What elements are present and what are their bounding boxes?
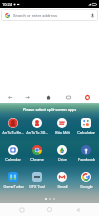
button[interactable]: Home bbox=[43, 203, 56, 216]
staticText: Google bbox=[80, 184, 93, 189]
staticText: GFX Tool bbox=[29, 184, 45, 189]
staticText: 10:24 bbox=[2, 2, 12, 7]
button[interactable]: Google bbox=[75, 172, 97, 189]
button[interactable]: Gmail bbox=[51, 172, 73, 189]
staticText: Please select split-screen apps bbox=[0, 107, 99, 112]
button[interactable]: GameTurbo bbox=[2, 172, 24, 189]
button[interactable]: Search or enter address bbox=[1, 9, 98, 21]
button[interactable]: AnTuTu Benc… bbox=[2, 118, 24, 135]
button[interactable]: Báo Mới bbox=[51, 118, 73, 135]
button[interactable]: Back bbox=[71, 203, 84, 216]
staticText: AnTuTu Benc… bbox=[2, 130, 24, 135]
button[interactable]: Home bbox=[42, 91, 55, 104]
staticText: GameTurbo bbox=[3, 184, 24, 189]
staticText: Calculator bbox=[77, 130, 95, 135]
button[interactable]: Recent apps bbox=[15, 203, 28, 216]
button[interactable]: Calculator bbox=[75, 118, 97, 135]
button[interactable]: Drive bbox=[51, 145, 73, 162]
staticText: Báo Mới bbox=[55, 130, 70, 135]
staticText: AnTuTu 3DBe… bbox=[26, 130, 48, 135]
staticText: Search or enter address bbox=[13, 13, 58, 18]
button[interactable]: Forward bbox=[21, 91, 34, 104]
button[interactable]: Back bbox=[4, 91, 17, 104]
staticText: Calendar bbox=[5, 157, 21, 162]
button[interactable]: GFX Tool bbox=[26, 172, 48, 189]
button[interactable]: Tabs bbox=[62, 91, 75, 104]
button[interactable]: Facebook bbox=[75, 145, 97, 162]
button[interactable]: Calendar bbox=[2, 145, 24, 162]
button[interactable]: AnTuTu 3DBe… bbox=[26, 118, 48, 135]
staticText: Facebook bbox=[78, 157, 95, 162]
staticText: Chrome bbox=[30, 157, 44, 162]
staticText: Gmail bbox=[57, 184, 68, 189]
button[interactable]: Opera menu bbox=[81, 91, 94, 104]
button[interactable]: Chrome bbox=[26, 145, 48, 162]
staticText: Drive bbox=[58, 157, 67, 162]
button[interactable]: Voice search bbox=[88, 11, 96, 19]
